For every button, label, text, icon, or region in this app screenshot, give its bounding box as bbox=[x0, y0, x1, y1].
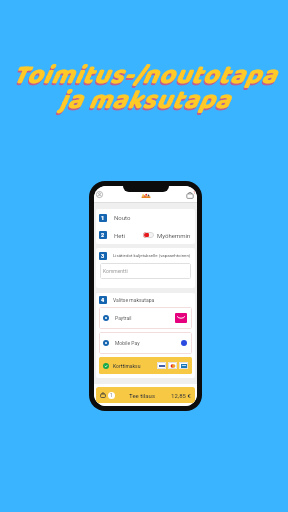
button[interactable]: Korttimaksu bbox=[99, 357, 192, 374]
staticText: Toimitus-/noutotapa ja maksutapa bbox=[0, 56, 287, 124]
staticText: Mobile Pay bbox=[115, 340, 140, 346]
button[interactable]: 1 bbox=[96, 387, 195, 403]
button[interactable]: 1 bbox=[96, 209, 195, 226]
staticText: Tee tilaus bbox=[129, 392, 156, 399]
button[interactable]: Paytrail bbox=[99, 307, 192, 329]
staticText: Heti bbox=[114, 232, 125, 239]
staticText: Myöhemmin bbox=[157, 232, 191, 239]
staticText: 1 bbox=[101, 215, 105, 221]
staticText: Lisätiedot kuljetukselle (vapaaehtoinen) bbox=[113, 253, 191, 258]
staticText: Toimitus-/noutotapa ja maksutapa bbox=[0, 54, 288, 122]
staticText: 2 bbox=[101, 232, 105, 238]
staticText: 1 bbox=[193, 190, 196, 195]
staticText: Korttimaksu bbox=[113, 363, 141, 369]
staticText: 4 bbox=[101, 297, 105, 303]
button[interactable]: 2 bbox=[96, 226, 195, 244]
button[interactable]: Kommentti bbox=[100, 263, 191, 279]
staticText: 12,85 € bbox=[171, 392, 191, 399]
staticText: Nouto bbox=[114, 214, 131, 221]
button[interactable]: Deliver later toggle bbox=[143, 232, 154, 238]
button[interactable]: Account bbox=[96, 191, 103, 198]
staticText: Valitse maksutapa bbox=[113, 297, 155, 303]
staticText: Kommentti bbox=[103, 268, 128, 274]
button[interactable]: Mobile Pay bbox=[99, 332, 192, 354]
staticText: 3 bbox=[101, 253, 105, 259]
staticText: 1 bbox=[110, 393, 113, 398]
staticText: Paytrail bbox=[115, 315, 132, 321]
button[interactable]: Shopping cart bbox=[186, 191, 194, 199]
